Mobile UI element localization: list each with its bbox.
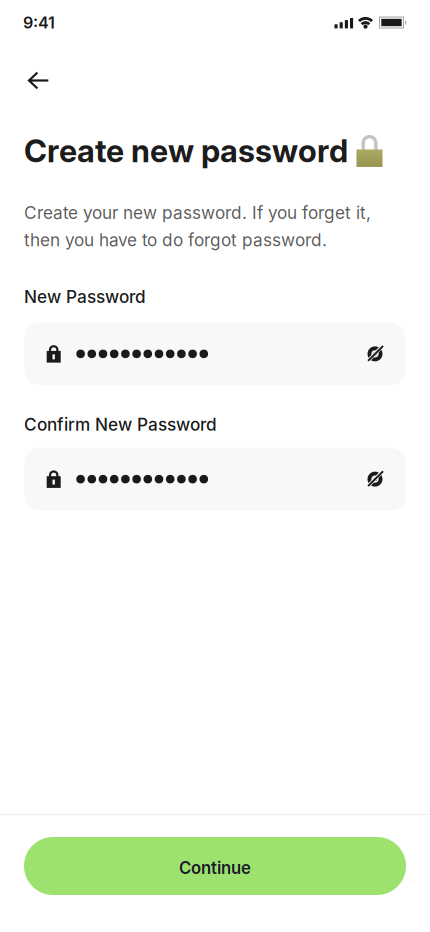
staticText: Continue	[179, 858, 251, 878]
button[interactable]: Back	[28, 72, 49, 89]
staticText: Confirm New Password	[24, 414, 217, 435]
staticText: 9:41	[23, 13, 55, 32]
staticText: New Password	[24, 286, 146, 307]
button[interactable]: Show password	[364, 343, 386, 365]
button[interactable]: Show password	[364, 468, 386, 490]
staticText: Create new password	[24, 132, 348, 170]
staticText: Create your new password. If you forget …	[24, 202, 371, 250]
button[interactable]: Continue	[24, 837, 406, 895]
